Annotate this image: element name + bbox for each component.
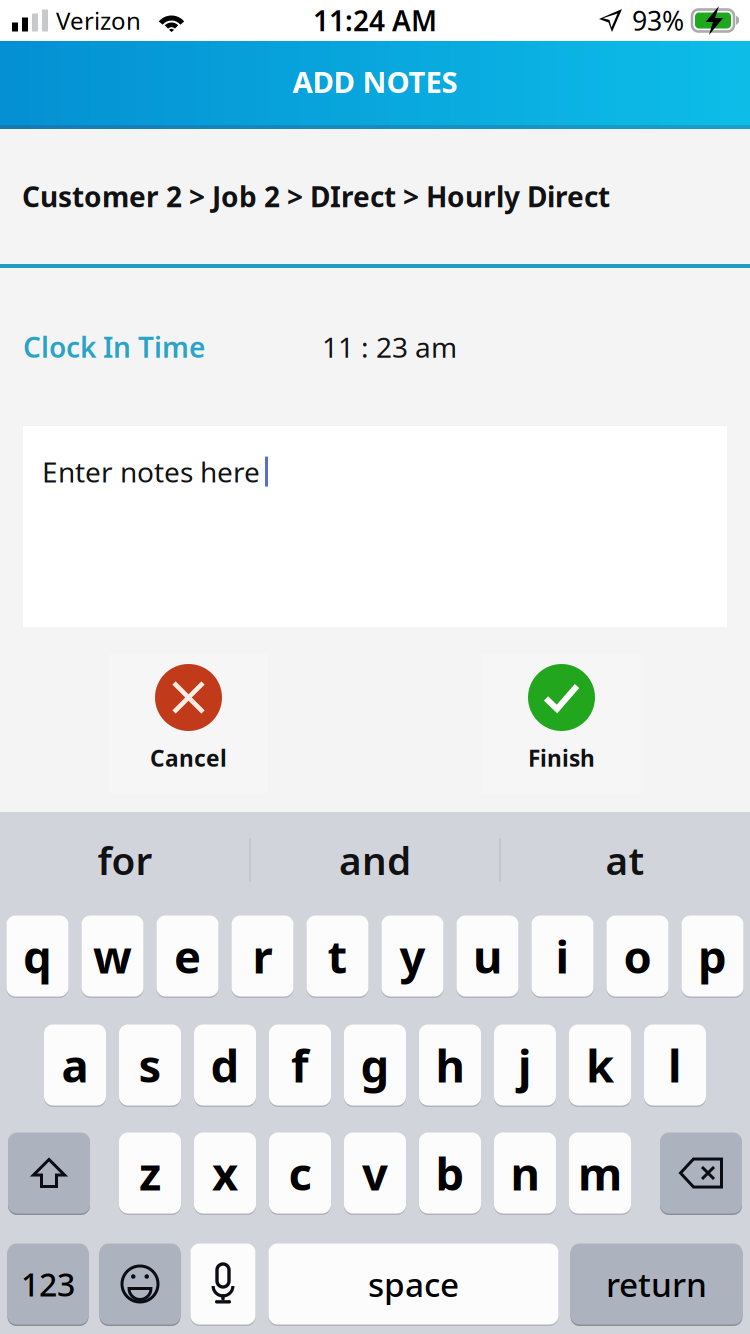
button[interactable]: y [381,914,443,998]
staticText: Customer 2 > Job 2 > DIrect > Hourly Dir… [22,178,610,215]
staticText: p [698,926,727,986]
staticText: s [138,1035,161,1095]
staticText: b [435,1143,464,1203]
staticText: Cancel [150,743,227,773]
staticText: ADD NOTES [292,62,457,101]
staticText: i [555,926,569,986]
button[interactable]: j [494,1023,556,1107]
button[interactable]: w [81,914,143,998]
staticText: a [61,1035,88,1095]
staticText: x [212,1143,238,1203]
button[interactable]: m [569,1131,631,1215]
button[interactable]: f [269,1023,331,1107]
staticText: g [360,1035,389,1095]
button[interactable]: Cancel [109,654,268,793]
button[interactable]: s [119,1023,181,1107]
staticText: u [473,926,502,986]
staticText: q [23,926,52,986]
staticText: f [291,1035,309,1095]
button[interactable]: r [231,914,293,998]
button[interactable]: return [570,1242,742,1326]
button[interactable]: t [306,914,368,998]
staticText: e [174,926,201,986]
button[interactable]: o [606,914,668,998]
button[interactable]: n [494,1131,556,1215]
button[interactable]: v [344,1131,406,1215]
staticText: Enter notes here [42,453,260,490]
button[interactable]: Numbers [7,1242,88,1326]
staticText: d [210,1035,239,1095]
staticText: z [139,1143,161,1203]
staticText: w [93,926,132,986]
button[interactable]: c [269,1131,331,1215]
staticText: at [605,834,644,886]
staticText: m [578,1143,622,1203]
button[interactable]: a [44,1023,106,1107]
staticText: h [435,1035,464,1095]
staticText: t [327,926,347,986]
button[interactable]: space [268,1242,558,1326]
button[interactable]: d [194,1023,256,1107]
button[interactable]: l [644,1023,706,1107]
staticText: Finish [528,743,595,773]
staticText: c [288,1143,311,1203]
staticText: k [586,1035,614,1095]
staticText: l [668,1035,682,1095]
staticText: space [368,1262,459,1306]
staticText: for [97,834,152,886]
staticText: 11:24 AM [313,2,437,39]
staticText: 93% [632,3,684,38]
staticText: Clock In Time [23,328,205,366]
button[interactable]: z [119,1131,181,1215]
button[interactable]: q [6,914,68,998]
staticText: Verizon [56,5,141,36]
button[interactable]: u [456,914,518,998]
button[interactable]: x [194,1131,256,1215]
button[interactable]: g [344,1023,406,1107]
button[interactable]: h [419,1023,481,1107]
button[interactable]: e [156,914,218,998]
button[interactable]: k [569,1023,631,1107]
staticText: o [623,926,651,986]
button[interactable]: b [419,1131,481,1215]
button[interactable]: at [500,812,749,908]
button[interactable]: p [681,914,743,998]
staticText: and [339,834,411,886]
button[interactable]: Emoji [99,1242,180,1326]
staticText: v [362,1143,388,1203]
button[interactable]: for [0,812,249,908]
button[interactable]: Shift [8,1131,90,1215]
staticText: return [606,1262,707,1306]
staticText: n [510,1143,539,1203]
button[interactable]: i [531,914,593,998]
button[interactable]: Delete [660,1131,742,1215]
button[interactable]: and [250,812,499,908]
staticText: 11 : 23 am [322,328,457,366]
button[interactable]: Finish [482,654,641,793]
staticText: y [399,926,425,986]
staticText: j [518,1035,532,1095]
staticText: r [252,926,272,986]
staticText: 123 [21,1263,75,1305]
button[interactable]: Dictation [190,1242,255,1326]
